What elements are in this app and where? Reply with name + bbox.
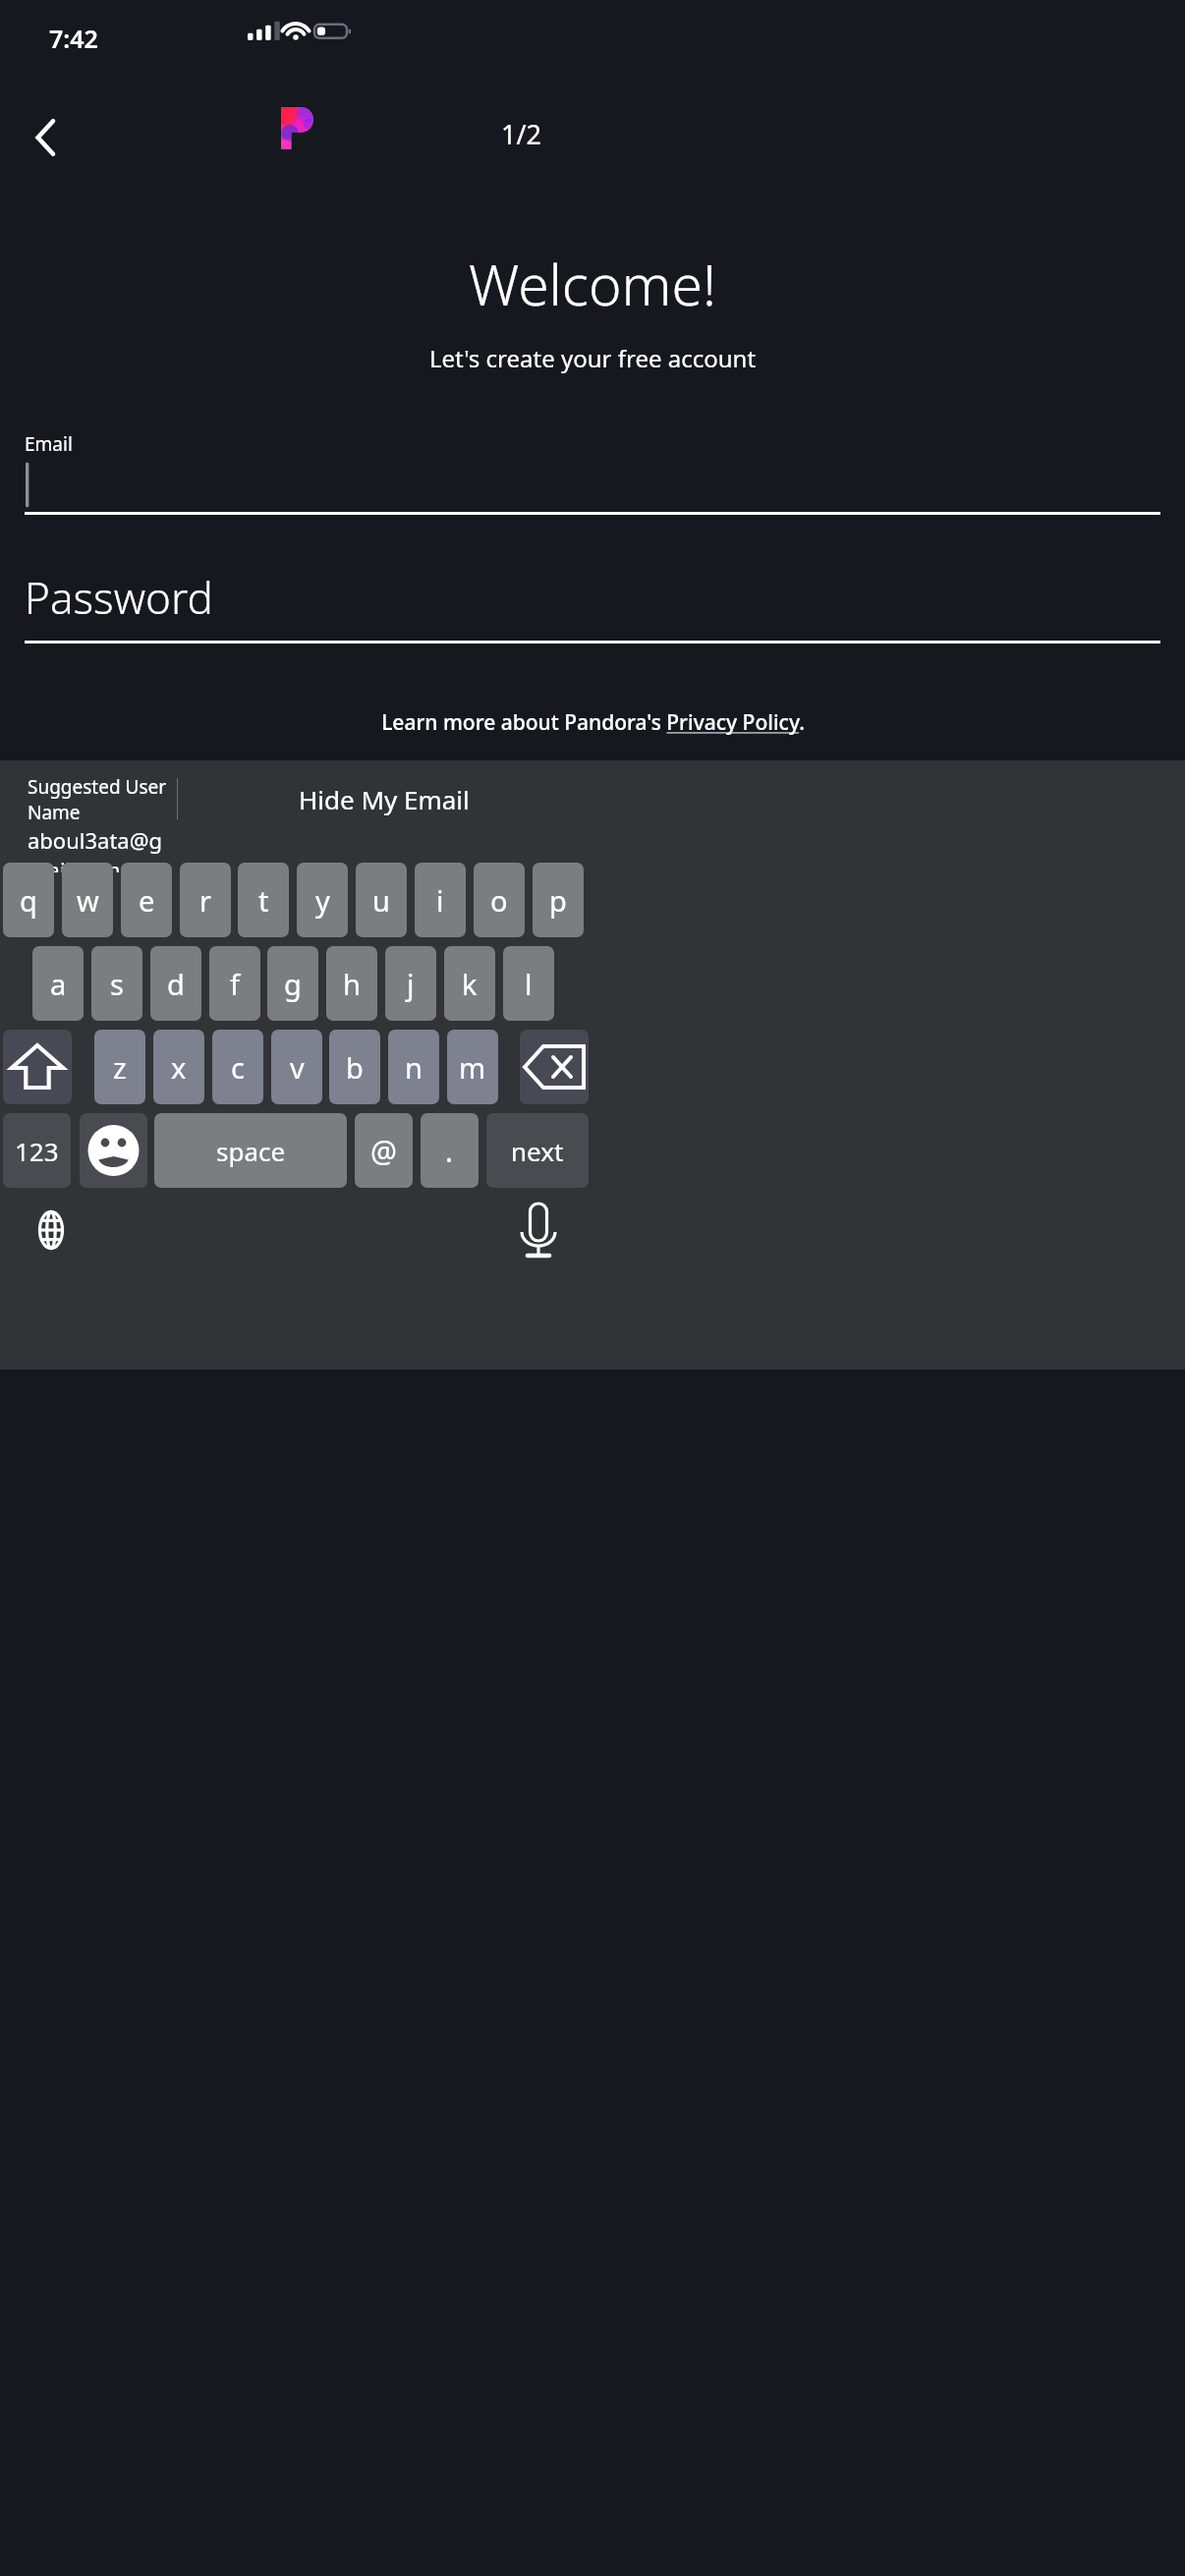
staticText: 123	[15, 1134, 59, 1168]
button[interactable]: v	[271, 1030, 322, 1104]
staticText: @	[370, 1131, 397, 1171]
button[interactable]: a	[32, 946, 84, 1021]
staticText: x	[171, 1048, 187, 1087]
button[interactable]: 123	[3, 1113, 71, 1188]
staticText: .	[445, 1131, 454, 1171]
staticText: Learn more about Pandora's Privacy Polic…	[381, 708, 805, 737]
button[interactable]: l	[503, 946, 554, 1021]
button[interactable]: Learn more about Pandora's Privacy Polic…	[0, 708, 1185, 737]
button[interactable]: q	[3, 863, 54, 937]
button[interactable]: x	[153, 1030, 204, 1104]
button[interactable]: space	[154, 1113, 347, 1188]
staticText: w	[77, 881, 99, 920]
staticText: p	[549, 881, 567, 920]
button[interactable]: p	[533, 863, 584, 937]
button[interactable]: next	[486, 1113, 589, 1188]
staticText: b	[346, 1048, 364, 1087]
staticText: e	[139, 881, 155, 920]
button[interactable]: t	[238, 863, 289, 937]
button[interactable]: Hide My Email	[195, 770, 574, 827]
button[interactable]: u	[356, 863, 407, 937]
button[interactable]: j	[385, 946, 436, 1021]
staticText: u	[372, 881, 390, 920]
staticText: space	[216, 1134, 286, 1168]
staticText: 1/2	[501, 116, 541, 152]
staticText: next	[511, 1134, 564, 1168]
staticText: m	[459, 1048, 486, 1087]
staticText: d	[167, 965, 185, 1003]
button[interactable]: o	[474, 863, 525, 937]
staticText: Hide My Email	[299, 782, 470, 816]
button[interactable]: d	[150, 946, 201, 1021]
button[interactable]: z	[94, 1030, 145, 1104]
staticText: Let's create your free account	[0, 342, 1185, 374]
button[interactable]: Emoji	[80, 1113, 147, 1188]
staticText: Welcome!	[0, 246, 1185, 322]
button[interactable]: Voice input	[509, 1201, 568, 1260]
staticText: f	[230, 965, 240, 1003]
staticText: Email	[25, 431, 73, 457]
button[interactable]: g	[267, 946, 318, 1021]
staticText: j	[407, 965, 415, 1003]
staticText: z	[113, 1048, 127, 1087]
button[interactable]: h	[326, 946, 377, 1021]
button[interactable]: Back	[12, 103, 81, 172]
button[interactable]: i	[415, 863, 466, 937]
button[interactable]: e	[121, 863, 172, 937]
staticText: y	[315, 881, 330, 920]
button[interactable]	[25, 457, 1160, 512]
staticText: h	[343, 965, 361, 1003]
staticText: Suggested User Name	[28, 774, 177, 825]
staticText: k	[462, 965, 478, 1003]
button[interactable]: k	[444, 946, 495, 1021]
button[interactable]: .	[421, 1113, 479, 1188]
button[interactable]: w	[62, 863, 113, 937]
button[interactable]: s	[91, 946, 142, 1021]
staticText: n	[405, 1048, 423, 1087]
button[interactable]: r	[180, 863, 231, 937]
button[interactable]: Pandora	[281, 107, 314, 149]
staticText: o	[490, 881, 508, 920]
button[interactable]: Shift	[3, 1030, 72, 1104]
button[interactable]: Password	[25, 568, 1160, 644]
button[interactable]: Suggested User Name	[28, 774, 177, 872]
button[interactable]: @	[355, 1113, 413, 1188]
staticText: a	[50, 965, 67, 1003]
staticText: r	[199, 881, 211, 920]
staticText: i	[436, 881, 444, 920]
button[interactable]: f	[209, 946, 260, 1021]
button[interactable]: Change keyboard language	[22, 1201, 81, 1260]
staticText: Password	[25, 568, 213, 627]
staticText: q	[20, 881, 37, 920]
staticText: l	[525, 965, 533, 1003]
button[interactable]: c	[212, 1030, 263, 1104]
button[interactable]: Backspace	[520, 1030, 589, 1104]
staticText: g	[284, 965, 302, 1003]
staticText: aboul3ata@gmail.com	[28, 825, 177, 872]
staticText: c	[231, 1048, 245, 1087]
staticText: s	[110, 965, 124, 1003]
button[interactable]: n	[388, 1030, 439, 1104]
staticText: t	[258, 881, 269, 920]
button[interactable]: b	[329, 1030, 380, 1104]
button[interactable]: y	[297, 863, 348, 937]
staticText: 7:42	[49, 22, 98, 55]
staticText: v	[290, 1048, 305, 1087]
button[interactable]: m	[447, 1030, 498, 1104]
